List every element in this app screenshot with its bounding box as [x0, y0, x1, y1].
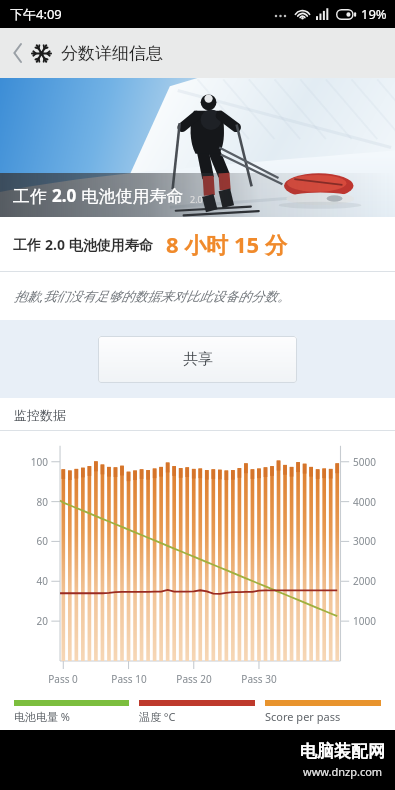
staticText: 共享: [183, 350, 213, 369]
staticText: Pass 30: [241, 672, 277, 686]
staticText: 电池电量 %: [14, 709, 71, 724]
staticText: 8 小时 15 分: [166, 229, 287, 259]
staticText: 工作: [13, 184, 52, 207]
staticText: 2.0: [45, 235, 65, 254]
staticText: 5000: [353, 455, 376, 469]
staticText: 3000: [353, 534, 376, 548]
staticText: 2000: [353, 574, 376, 588]
staticText: 20: [36, 614, 48, 628]
staticText: 19%: [361, 5, 387, 23]
staticText: Pass 10: [111, 672, 147, 686]
staticText: 2.0: [190, 193, 203, 205]
staticText: 2.0: [52, 184, 77, 207]
staticText: 温度 °C: [139, 709, 176, 724]
staticText: 4000: [353, 495, 376, 509]
staticText: 1000: [353, 614, 376, 628]
button[interactable]: Back: [5, 32, 31, 74]
staticText: 监控数据: [14, 407, 66, 423]
staticText: 下午4:09: [10, 5, 62, 23]
staticText: 分数详细信息: [61, 43, 163, 64]
staticText: 电池使用寿命: [77, 184, 184, 207]
staticText: Pass 20: [176, 672, 212, 686]
staticText: 电池使用寿命: [65, 235, 153, 254]
staticText: Pass 0: [48, 672, 78, 686]
staticText: 工作: [13, 235, 45, 254]
staticText: www.dnzp.com: [303, 764, 383, 779]
button[interactable]: 共享: [98, 336, 297, 383]
staticText: Score per pass: [265, 709, 341, 724]
staticText: 100: [30, 455, 48, 469]
staticText: 电脑装配网: [300, 741, 385, 762]
staticText: 40: [36, 574, 48, 588]
staticText: 抱歉,我们没有足够的数据来对比此设备的分数。: [14, 287, 291, 305]
staticText: 60: [36, 534, 48, 548]
staticText: 80: [36, 495, 48, 509]
